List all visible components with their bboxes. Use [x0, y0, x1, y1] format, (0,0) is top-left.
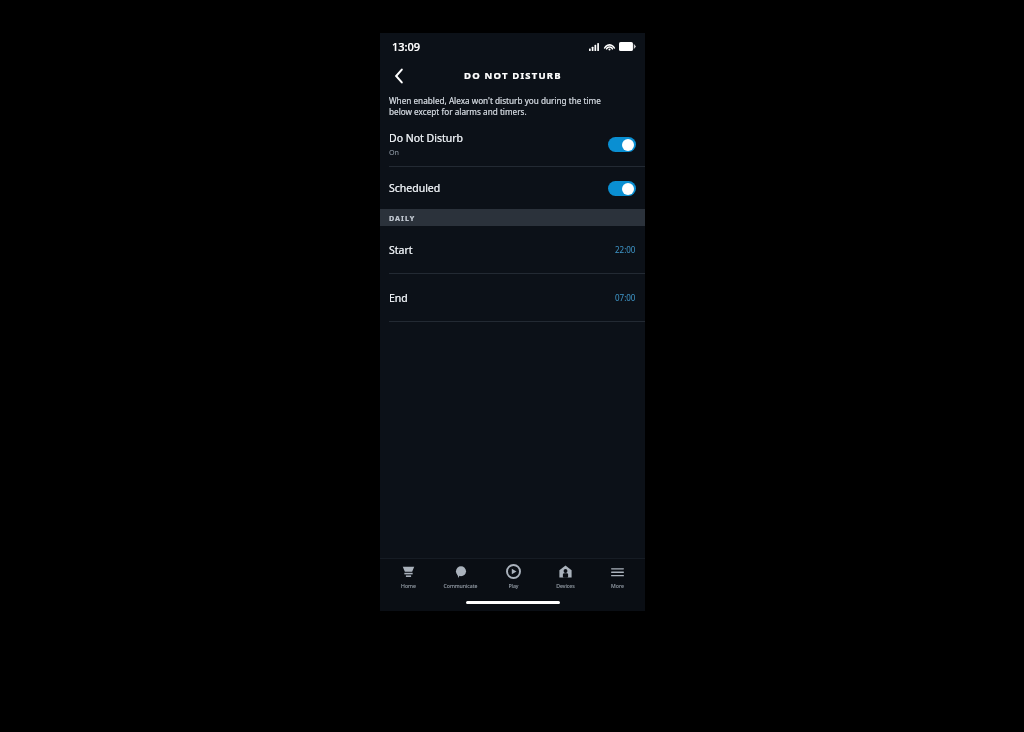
staticText: Devices	[556, 582, 575, 589]
button[interactable]: Scheduled	[380, 167, 645, 209]
staticText: DAILY	[389, 213, 416, 223]
staticText: On	[389, 147, 400, 157]
staticText: Do Not Disturb	[389, 131, 464, 145]
staticText: End	[389, 291, 615, 305]
staticText: Home	[401, 582, 416, 589]
staticText: 07:00	[615, 292, 636, 303]
staticText: Scheduled	[389, 181, 608, 195]
button[interactable]: Do Not Disturb	[380, 122, 645, 166]
staticText: 13:09	[392, 39, 421, 54]
button[interactable]: End	[380, 274, 645, 321]
staticText: Start	[389, 243, 615, 257]
button[interactable]: Back	[385, 62, 413, 90]
staticText: When enabled, Alexa won't disturb you du…	[389, 95, 601, 117]
staticText: Play	[508, 582, 519, 589]
staticText: More	[611, 582, 624, 589]
button[interactable]: Devices	[541, 563, 589, 589]
staticText: Communicate	[443, 582, 478, 589]
button[interactable]: Play	[489, 563, 537, 589]
button[interactable]: More	[593, 563, 641, 589]
staticText: DO NOT DISTURB	[464, 69, 562, 82]
button[interactable]: Home	[384, 563, 432, 589]
button[interactable]: Toggle switch on	[608, 137, 636, 152]
button[interactable]: Start	[380, 226, 645, 273]
button[interactable]: Toggle switch on	[608, 181, 636, 196]
staticText: 22:00	[615, 244, 636, 255]
button[interactable]: Communicate	[436, 563, 484, 589]
